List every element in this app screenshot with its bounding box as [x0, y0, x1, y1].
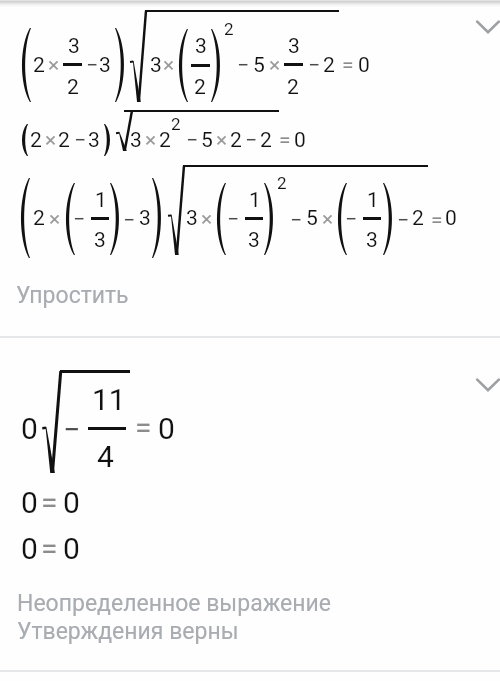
staticText: 2 [171, 114, 181, 134]
staticText: 2 [33, 53, 45, 78]
staticText: − [308, 53, 321, 78]
staticText: × [145, 128, 157, 153]
button[interactable]: Collapse step [467, 4, 500, 46]
staticText: × [269, 53, 281, 78]
staticText: 2 [323, 53, 335, 78]
staticText: − [123, 208, 136, 233]
staticText: 2 [260, 128, 272, 153]
staticText: × [49, 207, 61, 232]
staticText: 2 [287, 75, 299, 100]
staticText: = [279, 128, 291, 153]
staticText: 2 [194, 75, 206, 100]
staticText: 3 [130, 128, 142, 153]
staticText: 2 [33, 206, 45, 231]
staticText: × [201, 207, 213, 232]
staticText: 0 [21, 411, 38, 446]
staticText: Неопределенное выражение [17, 590, 331, 617]
staticText: Упростить [16, 282, 129, 309]
staticText: 0 [21, 531, 38, 566]
staticText: 2 [230, 128, 242, 153]
staticText: = [41, 531, 58, 566]
staticText: − [63, 412, 81, 447]
staticText: − [290, 208, 303, 233]
staticText: 4 [97, 439, 114, 474]
staticText: 0 [445, 206, 457, 231]
staticText: 3 [248, 228, 260, 253]
staticText: 2 [58, 128, 70, 153]
staticText: 1 [95, 188, 107, 213]
button[interactable]: Collapse step [467, 362, 500, 404]
staticText: 11 [92, 382, 126, 417]
staticText: = [431, 208, 443, 233]
staticText: × [45, 128, 57, 153]
staticText: 2 [277, 173, 287, 193]
staticText: − [74, 128, 87, 153]
staticText: 2 [159, 128, 171, 153]
staticText: − [397, 208, 410, 233]
staticText: × [322, 207, 334, 232]
staticText: 2 [67, 75, 79, 100]
staticText: = [342, 53, 354, 78]
staticText: 5 [306, 206, 318, 231]
staticText: 0 [21, 485, 38, 520]
staticText: 3 [99, 53, 111, 78]
staticText: 3 [150, 53, 162, 78]
staticText: − [73, 207, 86, 232]
staticText: 3 [288, 34, 300, 59]
staticText: − [86, 53, 99, 78]
staticText: 1 [249, 188, 261, 213]
staticText: 3 [139, 206, 151, 231]
staticText: 3 [366, 228, 378, 253]
staticText: 0 [158, 411, 175, 446]
staticText: 5 [253, 53, 265, 78]
staticText: 3 [186, 206, 198, 231]
staticText: 0 [63, 485, 80, 520]
staticText: − [245, 128, 258, 153]
staticText: 0 [63, 531, 80, 566]
staticText: 2 [30, 128, 42, 153]
staticText: 0 [358, 53, 370, 78]
staticText: 5 [201, 128, 213, 153]
staticText: × [163, 53, 175, 78]
staticText: = [41, 485, 58, 520]
staticText: × [48, 53, 60, 78]
staticText: 2 [412, 206, 424, 231]
staticText: 0 [294, 128, 306, 153]
staticText: Утверждения верны [17, 618, 239, 645]
staticText: = [135, 410, 152, 445]
staticText: − [345, 207, 358, 232]
staticText: 1 [367, 188, 379, 213]
staticText: × [216, 128, 228, 153]
staticText: − [186, 128, 199, 153]
staticText: 3 [195, 34, 207, 59]
staticText: − [227, 207, 240, 232]
staticText: − [237, 53, 250, 78]
staticText: 3 [88, 128, 100, 153]
staticText: 3 [68, 34, 80, 59]
staticText: 2 [224, 19, 234, 39]
staticText: 3 [94, 228, 106, 253]
